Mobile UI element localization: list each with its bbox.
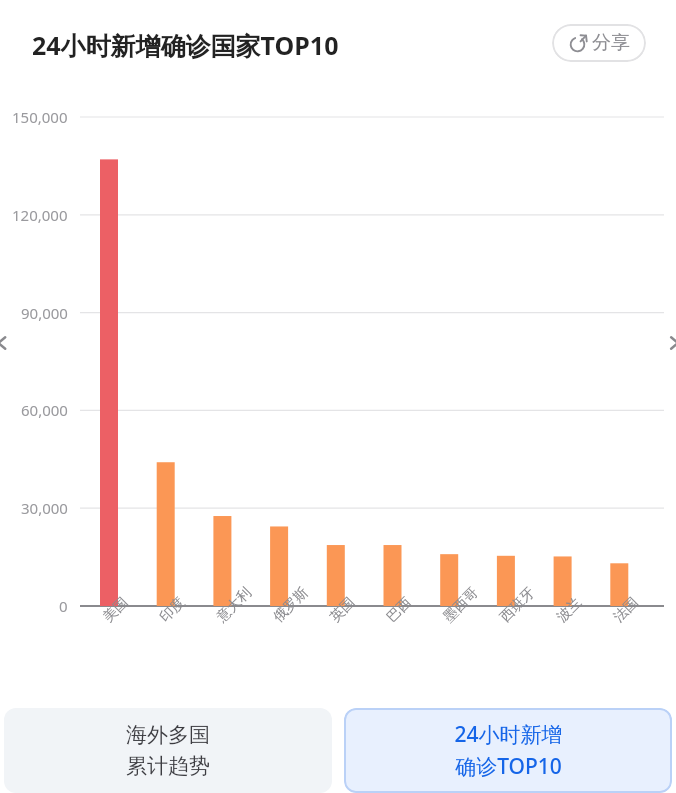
staticText: 24小时新增 确诊TOP10 [454,720,563,781]
staticText: 分享 [592,31,630,55]
button[interactable]: Next [652,321,676,365]
staticText: 24小时新增确诊国家TOP10 [32,28,339,62]
button[interactable]: 海外多国 累计趋势 [4,708,332,793]
button[interactable]: Previous [0,321,24,365]
button[interactable]: 分享 [552,24,646,62]
button[interactable]: 24小时新增 确诊TOP10 [344,708,672,793]
staticText: 海外多国 累计趋势 [126,722,210,779]
